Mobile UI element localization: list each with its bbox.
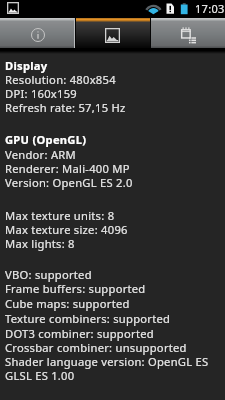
staticText: Refresh rate: 57,15 Hz: [5, 100, 126, 115]
staticText: Max texture units: 8: [5, 208, 115, 223]
staticText: Crossbar combiner: unsupported: [5, 340, 187, 355]
staticText: Resolution: 480x854: [5, 72, 116, 87]
button[interactable]: Info: [0, 18, 75, 48]
staticText: Vendor: ARM: [5, 147, 76, 162]
staticText: Display: [5, 58, 48, 73]
button[interactable]: Display: [75, 18, 150, 48]
staticText: Texture combiners: supported: [5, 311, 171, 326]
staticText: VBO: supported: [5, 267, 92, 282]
staticText: Shader language version: OpenGL ES: [5, 354, 209, 369]
staticText: GPU (OpenGL): [5, 132, 87, 147]
staticText: DPI: 160x159: [5, 86, 77, 101]
staticText: GLSL ES 1.00: [5, 368, 75, 383]
staticText: Renderer: Mali-400 MP: [5, 161, 130, 176]
button[interactable]: Report: [150, 18, 225, 48]
staticText: 17:03: [195, 1, 225, 16]
staticText: Frame buffers: supported: [5, 281, 146, 296]
staticText: Max texture size: 4096: [5, 222, 128, 237]
staticText: Max lights: 8: [5, 236, 75, 251]
staticText: Cube maps: supported: [5, 296, 130, 311]
staticText: DOT3 combiner: supported: [5, 326, 154, 341]
staticText: Version: OpenGL ES 2.0: [5, 175, 133, 190]
